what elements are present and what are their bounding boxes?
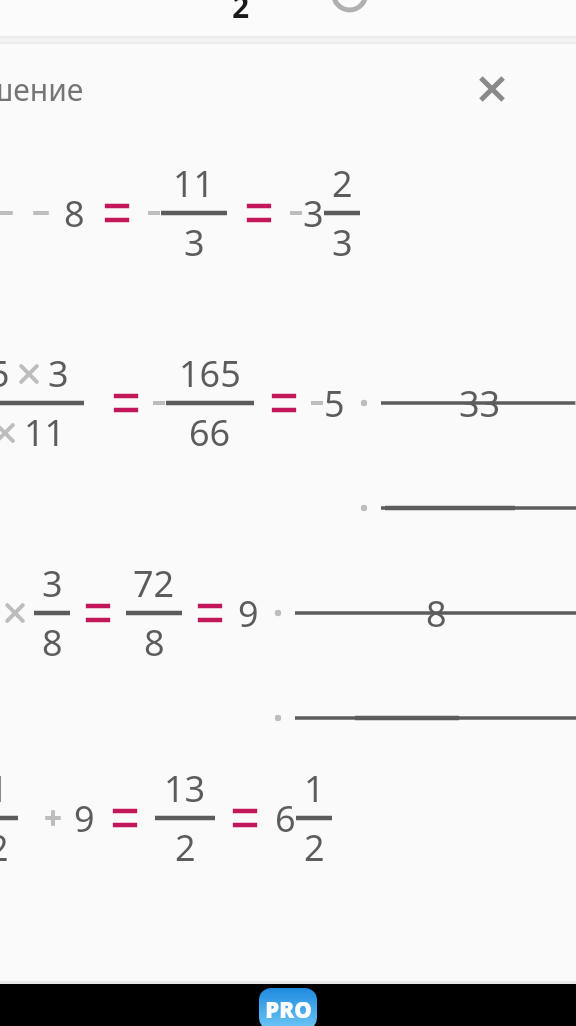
- staticText: 8: [426, 589, 447, 638]
- staticText: 6: [275, 794, 296, 843]
- staticText: 13: [164, 764, 206, 813]
- staticText: 9: [74, 794, 95, 843]
- button[interactable]: Реклама: [0, 984, 576, 1026]
- staticText: 3: [332, 218, 353, 267]
- button[interactable]: Закрыть: [466, 63, 518, 115]
- staticText: 2: [332, 159, 353, 208]
- staticText: 1: [0, 764, 9, 813]
- staticText: 5: [324, 379, 345, 428]
- staticText: 165: [179, 349, 241, 398]
- staticText: 11: [173, 159, 215, 208]
- staticText: 3: [303, 189, 324, 238]
- staticText: 5: [0, 349, 10, 398]
- staticText: PRO: [265, 994, 312, 1024]
- staticText: 66: [189, 408, 231, 457]
- staticText: 1: [304, 764, 325, 813]
- staticText: 2: [0, 823, 9, 872]
- staticText: 33: [459, 379, 501, 428]
- staticText: 11: [24, 408, 66, 457]
- staticText: 3: [184, 218, 205, 267]
- staticText: 9: [238, 589, 259, 638]
- staticText: 3: [42, 559, 63, 608]
- staticText: Решение: [0, 69, 84, 110]
- staticText: 8: [42, 618, 63, 667]
- staticText: 2: [232, 0, 250, 22]
- staticText: 8: [144, 618, 165, 667]
- staticText: 72: [133, 559, 175, 608]
- staticText: 2: [304, 823, 325, 872]
- staticText: 3: [48, 349, 69, 398]
- staticText: 8: [64, 189, 85, 238]
- staticText: 2: [175, 823, 196, 872]
